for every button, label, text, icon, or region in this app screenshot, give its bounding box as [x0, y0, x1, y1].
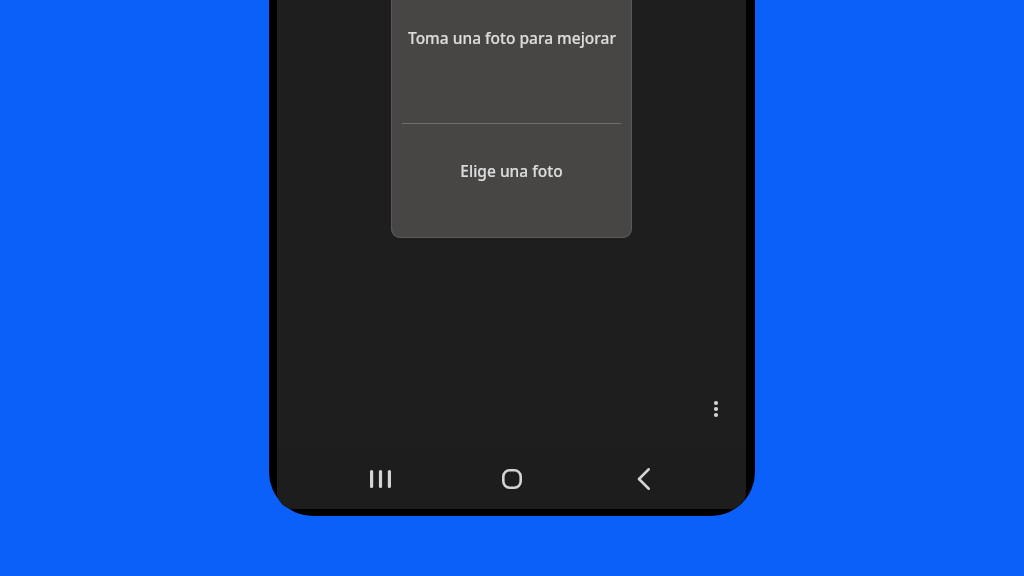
staticText: Elige una foto — [460, 160, 563, 181]
button[interactable]: More options — [694, 387, 738, 431]
button[interactable]: Home — [484, 451, 540, 507]
button[interactable]: Recent apps — [352, 451, 408, 507]
button[interactable]: Toma una foto para mejorar — [391, 0, 632, 123]
button[interactable]: Back — [615, 451, 671, 507]
staticText: Toma una foto para mejorar — [408, 27, 616, 48]
button[interactable]: Elige una foto — [391, 124, 632, 238]
